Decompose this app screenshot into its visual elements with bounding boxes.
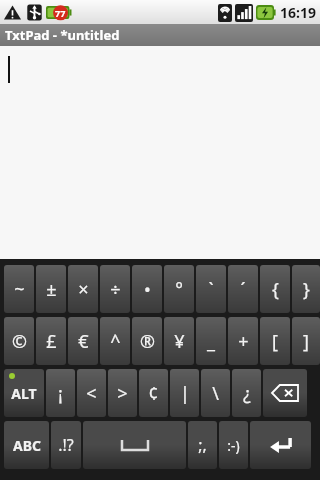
button[interactable]: ~ bbox=[4, 265, 34, 313]
button[interactable]: ÷ bbox=[100, 265, 130, 313]
button[interactable]: Backspace bbox=[263, 369, 307, 417]
staticText: ¡ bbox=[58, 381, 63, 406]
button[interactable]: > bbox=[108, 369, 137, 417]
button[interactable]: ¢ bbox=[139, 369, 168, 417]
staticText: ¥ bbox=[174, 329, 185, 354]
staticText: ABC bbox=[13, 436, 41, 455]
button[interactable]: + bbox=[228, 317, 258, 365]
staticText: ° bbox=[175, 277, 183, 302]
button[interactable]: ¡ bbox=[46, 369, 75, 417]
staticText: • bbox=[144, 277, 151, 302]
button[interactable]: © bbox=[4, 317, 34, 365]
staticText: :-) bbox=[227, 436, 240, 455]
button[interactable]: < bbox=[77, 369, 106, 417]
staticText: ± bbox=[46, 277, 57, 302]
staticText: 16:19 bbox=[280, 3, 316, 22]
button[interactable]: :-) bbox=[219, 421, 248, 469]
staticText: × bbox=[78, 277, 89, 302]
button[interactable]: ;, bbox=[188, 421, 217, 469]
button[interactable]: ] bbox=[292, 317, 320, 365]
button[interactable]: ALT bbox=[4, 369, 44, 417]
button[interactable]: ´ bbox=[228, 265, 258, 313]
button[interactable]: ` bbox=[196, 265, 226, 313]
staticText: .!? bbox=[58, 434, 74, 456]
staticText: [ bbox=[272, 329, 278, 354]
button[interactable]: \ bbox=[201, 369, 230, 417]
button[interactable]: ^ bbox=[100, 317, 130, 365]
staticText: ¿ bbox=[243, 381, 251, 406]
staticText: { bbox=[272, 277, 279, 302]
staticText: | bbox=[180, 381, 190, 406]
button[interactable]: | bbox=[170, 369, 199, 417]
staticText: € bbox=[78, 329, 89, 354]
staticText: ` bbox=[208, 277, 214, 302]
staticText: ÷ bbox=[110, 277, 121, 302]
button[interactable]: × bbox=[68, 265, 98, 313]
staticText: \ bbox=[212, 381, 219, 406]
staticText: ´ bbox=[240, 277, 246, 302]
staticText: © bbox=[12, 329, 27, 354]
button[interactable]: • bbox=[132, 265, 162, 313]
staticText: TxtPad - *untitled bbox=[5, 26, 120, 44]
button[interactable]: € bbox=[68, 317, 98, 365]
button[interactable]: { bbox=[260, 265, 290, 313]
button[interactable]: ¿ bbox=[232, 369, 261, 417]
button[interactable]: Enter bbox=[250, 421, 311, 469]
staticText: _ bbox=[207, 329, 215, 354]
button[interactable]: Space bbox=[83, 421, 186, 469]
staticText: ;, bbox=[198, 434, 207, 456]
staticText: £ bbox=[46, 329, 57, 354]
staticText: ALT bbox=[11, 384, 37, 403]
staticText: 77 bbox=[55, 7, 66, 19]
button[interactable]: £ bbox=[36, 317, 66, 365]
button[interactable]: ¥ bbox=[164, 317, 194, 365]
staticText: ~ bbox=[14, 277, 25, 302]
staticText: + bbox=[238, 329, 249, 354]
staticText: ® bbox=[140, 329, 155, 354]
button[interactable]: } bbox=[292, 265, 320, 313]
staticText: ¢ bbox=[148, 381, 159, 406]
button[interactable]: .!? bbox=[51, 421, 81, 469]
button[interactable]: [ bbox=[260, 317, 290, 365]
button[interactable]: ® bbox=[132, 317, 162, 365]
button[interactable]: ° bbox=[164, 265, 194, 313]
staticText: ^ bbox=[110, 329, 121, 354]
button[interactable]: _ bbox=[196, 317, 226, 365]
button[interactable]: ABC bbox=[4, 421, 49, 469]
staticText: > bbox=[117, 381, 128, 406]
button[interactable]: ± bbox=[36, 265, 66, 313]
staticText: < bbox=[86, 381, 97, 406]
staticText: ] bbox=[303, 329, 309, 354]
staticText: } bbox=[303, 277, 310, 302]
